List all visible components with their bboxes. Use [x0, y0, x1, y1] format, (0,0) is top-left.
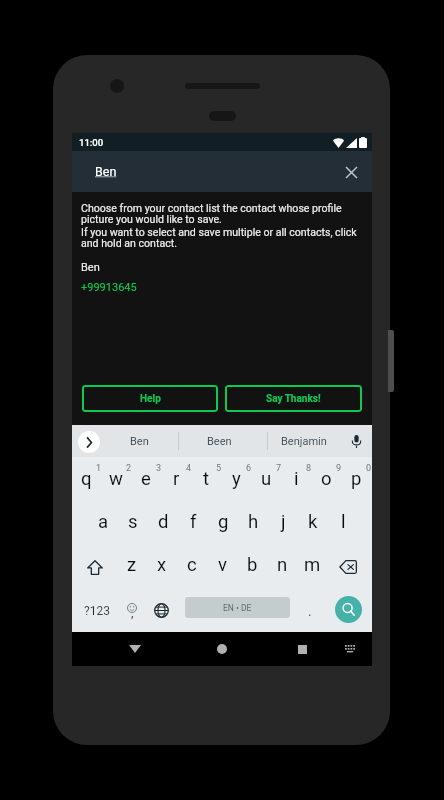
staticText: k: [308, 511, 318, 533]
button[interactable]: Help: [82, 385, 218, 412]
staticText: .: [308, 603, 312, 619]
button[interactable]: 6: [222, 457, 252, 501]
button[interactable]: n: [267, 545, 297, 589]
staticText: Say Thanks!: [266, 393, 321, 405]
button[interactable]: 4: [162, 457, 192, 501]
staticText: Ben: [81, 261, 100, 274]
button[interactable]: x: [147, 545, 177, 589]
button[interactable]: Voice input: [340, 425, 372, 457]
staticText: Ben: [95, 164, 117, 179]
button[interactable]: ?123: [72, 589, 121, 632]
button[interactable]: Close: [338, 159, 364, 185]
button[interactable]: h: [238, 501, 268, 545]
staticText: m: [304, 554, 321, 576]
staticText: 5: [216, 463, 222, 474]
staticText: 6: [246, 463, 252, 474]
button[interactable]: Emoji: [119, 589, 145, 632]
button[interactable]: c: [177, 545, 207, 589]
button[interactable]: a: [88, 501, 118, 545]
staticText: 1: [96, 463, 102, 474]
staticText: 8: [306, 463, 312, 474]
staticText: w: [109, 468, 123, 490]
button[interactable]: Home: [204, 632, 240, 666]
staticText: 3: [156, 463, 162, 474]
staticText: e: [141, 468, 151, 490]
button[interactable]: EN • DE: [185, 597, 290, 618]
button[interactable]: Say Thanks!: [225, 385, 362, 412]
button[interactable]: Recents: [284, 632, 320, 666]
staticText: z: [127, 554, 137, 576]
staticText: Benjamin: [281, 435, 327, 448]
staticText: h: [248, 511, 259, 533]
staticText: EN • DE: [223, 603, 252, 613]
staticText: r: [173, 468, 180, 490]
button[interactable]: 3: [132, 457, 162, 501]
button[interactable]: z: [117, 545, 147, 589]
button[interactable]: Switch keyboard: [335, 632, 365, 666]
button[interactable]: d: [148, 501, 178, 545]
staticText: u: [261, 468, 272, 490]
staticText: 11:00: [79, 137, 104, 148]
button[interactable]: Backspace: [327, 545, 372, 589]
button[interactable]: Back: [117, 632, 153, 666]
staticText: a: [98, 511, 109, 533]
button[interactable]: Been: [179, 425, 259, 457]
button[interactable]: l: [328, 501, 358, 545]
staticText: +99913645: [81, 281, 137, 294]
button[interactable]: f: [178, 501, 208, 545]
button[interactable]: g: [208, 501, 238, 545]
staticText: v: [218, 554, 227, 576]
button[interactable]: .: [296, 589, 324, 632]
button[interactable]: Ben: [100, 425, 178, 457]
staticText: j: [281, 511, 286, 533]
button[interactable]: 0: [342, 457, 372, 501]
staticText: b: [247, 554, 258, 576]
staticText: o: [321, 468, 332, 490]
button[interactable]: 9: [312, 457, 342, 501]
button[interactable]: k: [298, 501, 328, 545]
button[interactable]: Search: [330, 589, 367, 632]
button[interactable]: m: [297, 545, 327, 589]
staticText: n: [277, 554, 288, 576]
staticText: Help: [140, 393, 161, 405]
staticText: 9: [336, 463, 342, 474]
staticText: l: [341, 511, 346, 533]
button[interactable]: Benjamin: [268, 425, 340, 457]
button[interactable]: Language: [146, 589, 177, 632]
staticText: Been: [207, 435, 232, 448]
button[interactable]: s: [118, 501, 148, 545]
staticText: x: [157, 554, 167, 576]
staticText: s: [128, 511, 138, 533]
staticText: 0: [366, 463, 372, 474]
staticText: q: [81, 468, 92, 490]
staticText: p: [351, 468, 362, 490]
button[interactable]: 7: [252, 457, 282, 501]
staticText: g: [218, 511, 229, 533]
button[interactable]: 1: [72, 457, 102, 501]
button[interactable]: b: [237, 545, 267, 589]
staticText: i: [294, 468, 299, 490]
staticText: y: [232, 468, 241, 490]
staticText: d: [158, 511, 169, 533]
staticText: 2: [126, 463, 132, 474]
staticText: f: [190, 511, 197, 533]
button[interactable]: v: [207, 545, 237, 589]
button[interactable]: 5: [192, 457, 222, 501]
staticText: c: [187, 554, 197, 576]
staticText: Choose from your contact list the contac…: [81, 202, 363, 226]
staticText: ,: [131, 605, 134, 620]
button[interactable]: 2: [102, 457, 132, 501]
staticText: 7: [276, 463, 282, 474]
button[interactable]: 8: [282, 457, 312, 501]
staticText: t: [203, 468, 210, 490]
button[interactable]: j: [268, 501, 298, 545]
staticText: 4: [186, 463, 192, 474]
staticText: Ben: [130, 435, 149, 448]
staticText: ?123: [84, 604, 110, 618]
button[interactable]: Shift: [72, 545, 117, 589]
staticText: If you want to select and save multiple …: [81, 226, 363, 250]
button[interactable]: Expand suggestions: [78, 431, 100, 453]
